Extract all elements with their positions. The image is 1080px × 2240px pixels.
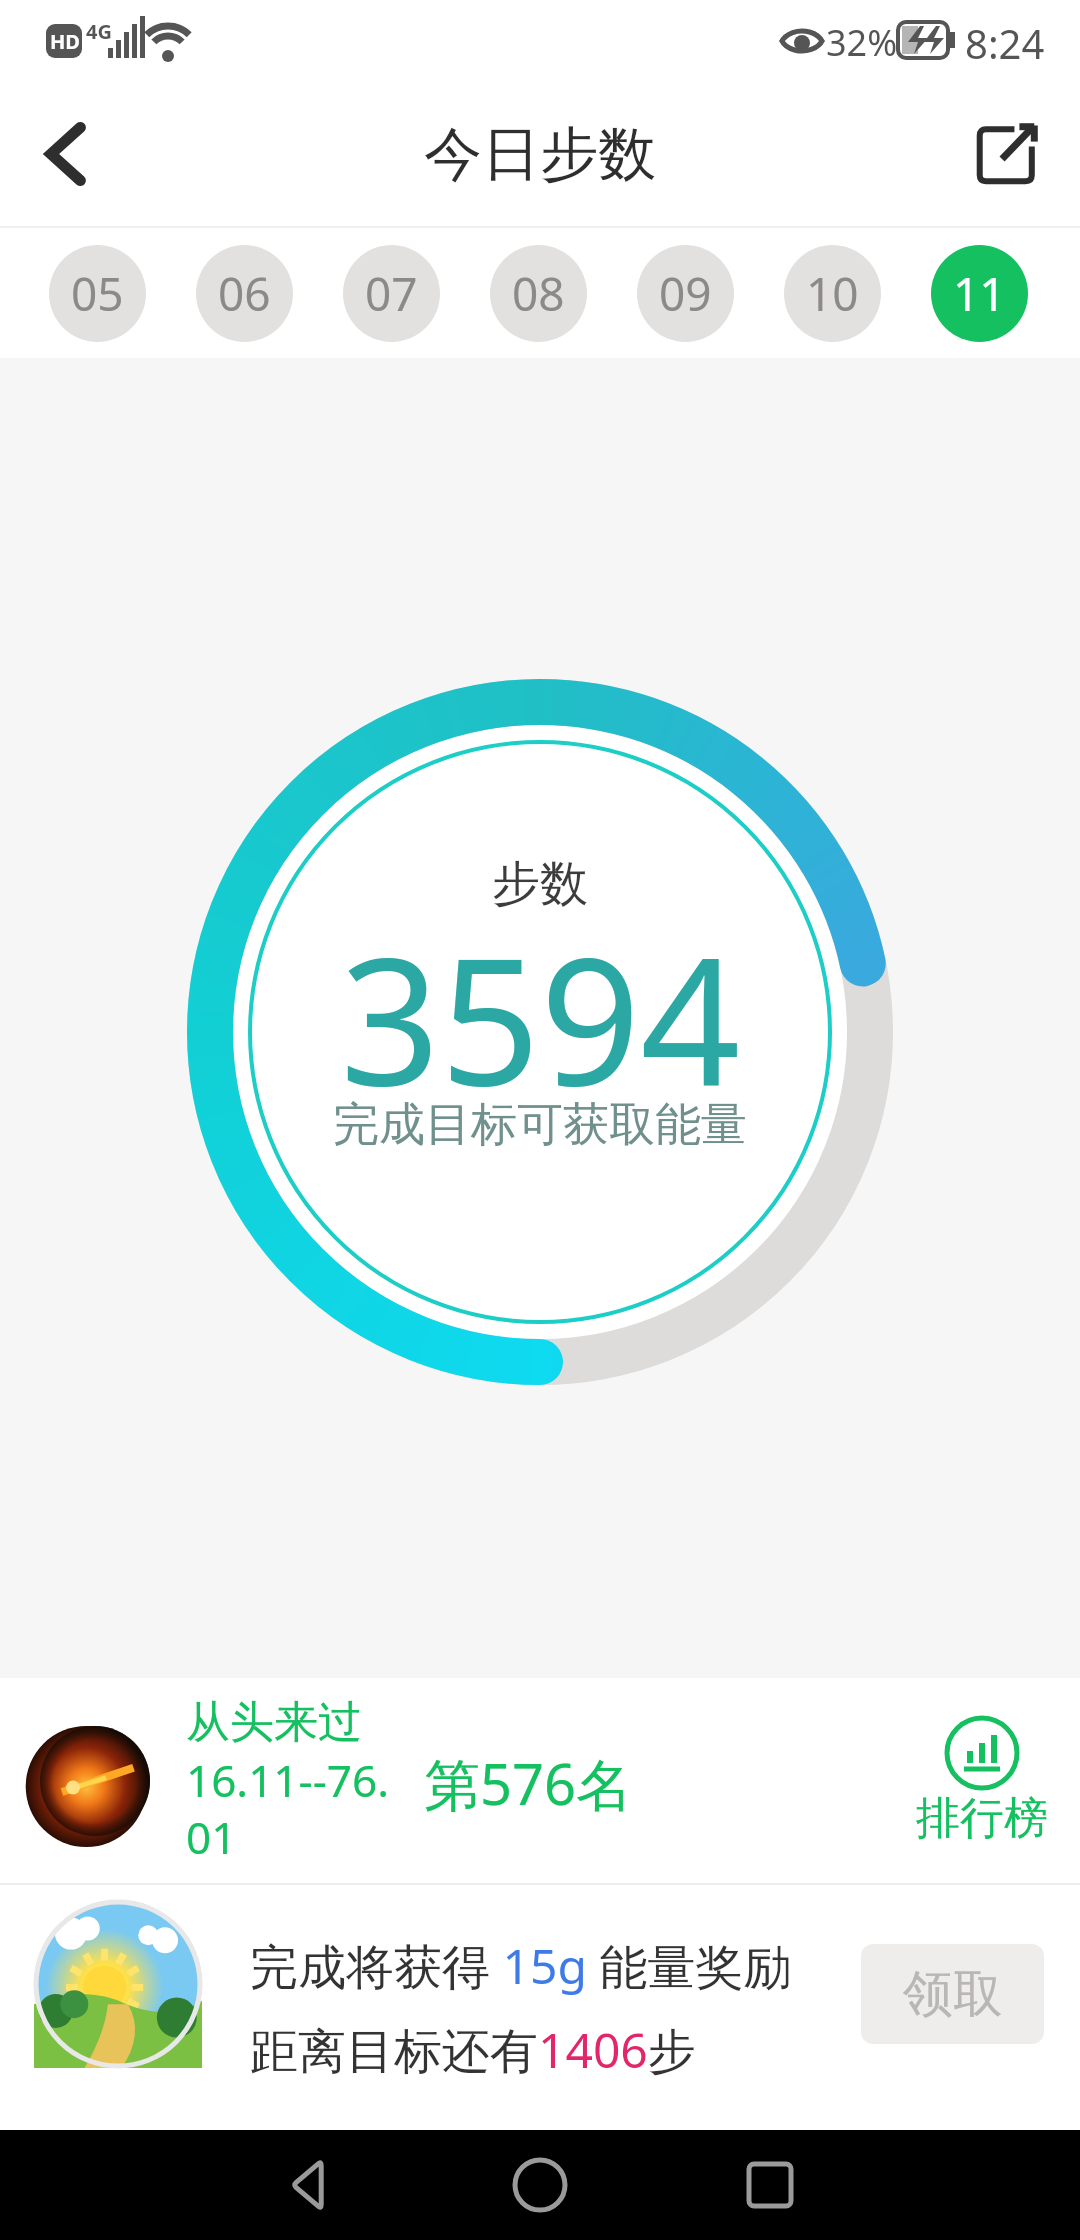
button[interactable]: 06 (196, 245, 293, 342)
staticText: 32% (826, 18, 898, 67)
button[interactable]: 10 (784, 245, 881, 342)
staticText: 步数 (492, 854, 588, 914)
staticText: 领取 (903, 1963, 1003, 2026)
staticText: 11 (953, 262, 1006, 325)
button[interactable] (735, 2150, 805, 2220)
button[interactable] (30, 119, 100, 189)
button[interactable]: 11 (931, 245, 1028, 342)
staticText: 排行榜 (916, 1791, 1048, 1846)
staticText: 距离目标还有1406步 (250, 2017, 696, 2083)
button[interactable]: 07 (343, 245, 440, 342)
button[interactable]: 05 (49, 245, 146, 342)
button[interactable] (505, 2150, 575, 2220)
staticText: 09 (659, 262, 712, 325)
button[interactable]: 09 (637, 245, 734, 342)
staticText: 完成将获得 15g 能量奖励 (250, 1933, 792, 1999)
staticText: 06 (218, 262, 271, 325)
button[interactable] (275, 2150, 345, 2220)
staticText: 10 (806, 262, 859, 325)
button[interactable]: 从头来过 16.11--76. 01 (0, 1678, 1080, 1883)
staticText: 3594 (340, 898, 741, 1136)
staticText: 05 (71, 262, 124, 325)
button[interactable]: 排行榜 (916, 1715, 1048, 1846)
button[interactable] (976, 123, 1038, 185)
staticText: 第576名 (424, 1745, 633, 1821)
button[interactable]: 领取 (861, 1944, 1044, 2044)
staticText: 8:24 (965, 16, 1045, 70)
staticText: 今日步数 (424, 118, 656, 191)
button[interactable]: 08 (490, 245, 587, 342)
staticText: 从头来过 16.11--76. 01 (186, 1695, 389, 1867)
staticText: 4G (86, 18, 112, 45)
staticText: 08 (512, 262, 565, 325)
staticText: 07 (365, 262, 418, 325)
staticText: 完成目标可获取能量 (333, 1096, 747, 1154)
staticText: HD (50, 28, 80, 55)
